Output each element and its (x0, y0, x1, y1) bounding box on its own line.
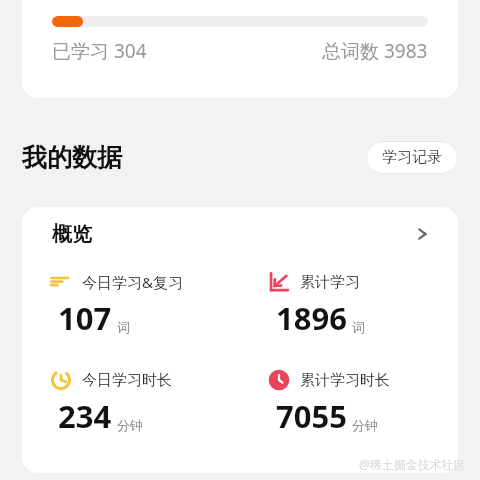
staticText: 累计学习 (300, 273, 360, 292)
button[interactable]: 累计学习时长 (240, 369, 458, 437)
staticText: 已学习 304 (52, 38, 147, 64)
staticText: 1896 (276, 297, 347, 339)
staticText: 分钟 (352, 417, 378, 433)
button[interactable]: 已学习 304 (22, 0, 458, 98)
button[interactable]: 累计学习 (240, 271, 458, 339)
button[interactable]: 今日学习时长 (22, 369, 240, 437)
staticText: 词 (352, 319, 365, 335)
staticText: 7055 (276, 395, 347, 437)
button[interactable]: 概览 (22, 207, 458, 261)
staticText: @稀土掘金技术社区 (359, 456, 466, 472)
other: Open overview (412, 224, 432, 244)
staticText: 总词数 3983 (322, 38, 428, 64)
staticText: 107 (58, 297, 112, 339)
staticText: 学习记录 (382, 148, 442, 167)
staticText: 概览 (52, 222, 92, 247)
staticText: 词 (117, 319, 130, 335)
button[interactable]: 学习记录 (366, 141, 458, 174)
staticText: 我的数据 (22, 142, 122, 173)
button[interactable]: 今日学习&复习 (22, 271, 240, 339)
staticText: 分钟 (117, 417, 143, 433)
staticText: 累计学习时长 (300, 371, 390, 390)
staticText: 今日学习&复习 (82, 272, 183, 292)
staticText: 今日学习时长 (82, 371, 172, 390)
staticText: 234 (58, 395, 112, 437)
